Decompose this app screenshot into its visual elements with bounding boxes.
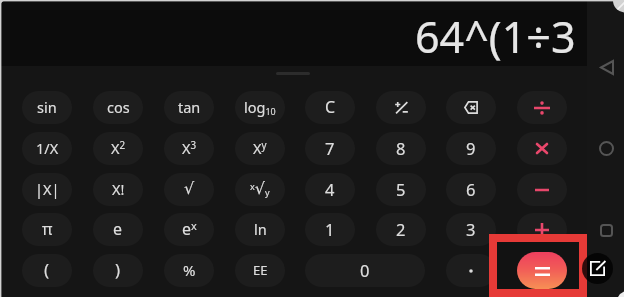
- staticText: x√y: [250, 179, 270, 198]
- staticText: 7: [325, 137, 335, 159]
- button[interactable]: Xy: [235, 132, 285, 165]
- button[interactable]: Recent apps: [588, 215, 624, 245]
- button[interactable]: Equals: [517, 252, 567, 289]
- staticText: 1: [325, 218, 335, 240]
- button[interactable]: 4: [305, 173, 355, 206]
- button[interactable]: Add: [517, 213, 567, 246]
- button[interactable]: tan: [164, 91, 214, 124]
- button[interactable]: √: [164, 173, 214, 206]
- staticText: 64^(1÷3: [415, 7, 576, 66]
- button[interactable]: X!: [93, 173, 143, 206]
- button[interactable]: 9: [446, 132, 496, 165]
- button[interactable]: Home: [588, 133, 624, 163]
- button[interactable]: Edit: [582, 253, 613, 284]
- staticText: C: [325, 96, 336, 118]
- button[interactable]: x√y: [235, 173, 285, 206]
- button[interactable]: 2: [376, 213, 426, 246]
- button[interactable]: |X|: [22, 173, 72, 206]
- staticText: √: [184, 179, 195, 198]
- button[interactable]: e: [93, 213, 143, 246]
- staticText: Xy: [253, 138, 267, 158]
- button[interactable]: X2: [93, 132, 143, 165]
- staticText: 6: [466, 178, 476, 200]
- staticText: X3: [182, 138, 197, 158]
- staticText: cos: [107, 97, 130, 117]
- staticText: 5: [396, 178, 406, 200]
- button[interactable]: EE: [235, 254, 285, 287]
- button[interactable]: C: [305, 91, 355, 124]
- staticText: log10: [244, 97, 276, 117]
- button[interactable]: 1/X: [22, 132, 72, 165]
- staticText: sin: [37, 97, 57, 117]
- button[interactable]: π: [22, 213, 72, 246]
- staticText: 8: [396, 137, 406, 159]
- button[interactable]: (: [22, 254, 72, 287]
- button[interactable]: 1: [305, 213, 355, 246]
- button[interactable]: cos: [93, 91, 143, 124]
- staticText: tan: [178, 97, 201, 117]
- staticText: X!: [112, 179, 125, 199]
- button[interactable]: 7: [305, 132, 355, 165]
- staticText: X2: [111, 138, 126, 158]
- button[interactable]: Subtract: [517, 173, 567, 206]
- staticText: π: [42, 218, 53, 240]
- button[interactable]: Backspace: [446, 91, 496, 124]
- button[interactable]: 3: [446, 213, 496, 246]
- button[interactable]: X3: [164, 132, 214, 165]
- button[interactable]: Multiply: [517, 132, 567, 165]
- staticText: e: [113, 218, 123, 240]
- staticText: |X|: [35, 179, 60, 199]
- button[interactable]: sin: [22, 91, 72, 124]
- button[interactable]: ): [93, 254, 143, 287]
- button[interactable]: 6: [446, 173, 496, 206]
- staticText: ln: [254, 219, 267, 239]
- button[interactable]: Decimal point: [446, 254, 496, 287]
- button[interactable]: 8: [376, 132, 426, 165]
- staticText: %: [183, 260, 196, 280]
- staticText: 1/X: [36, 138, 59, 158]
- staticText: ex: [182, 218, 197, 240]
- staticText: EE: [253, 261, 268, 279]
- staticText: ): [115, 258, 121, 281]
- button[interactable]: 5: [376, 173, 426, 206]
- button[interactable]: Plus minus: [376, 91, 426, 124]
- button[interactable]: ex: [164, 213, 214, 246]
- staticText: 9: [466, 137, 476, 159]
- button[interactable]: %: [164, 254, 214, 287]
- staticText: 3: [466, 218, 476, 240]
- staticText: 0: [360, 259, 370, 281]
- button[interactable]: Back: [588, 52, 624, 82]
- button[interactable]: ln: [235, 213, 285, 246]
- button[interactable]: 0: [305, 254, 425, 287]
- staticText: 4: [325, 178, 335, 200]
- staticText: (: [44, 258, 50, 281]
- staticText: 2: [396, 218, 406, 240]
- button[interactable]: log10: [235, 91, 285, 124]
- button[interactable]: Divide: [517, 91, 567, 124]
